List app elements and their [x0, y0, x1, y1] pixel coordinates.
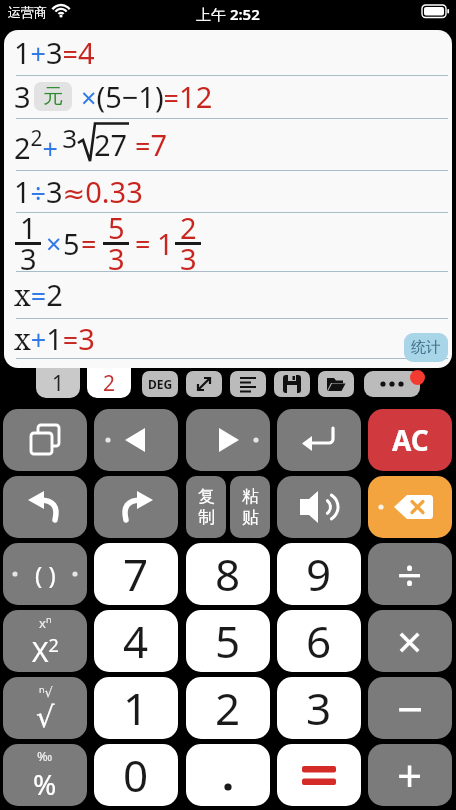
- button[interactable]: 统计: [404, 333, 448, 362]
- button[interactable]: AC: [368, 409, 452, 471]
- staticText: 7: [123, 544, 149, 604]
- button[interactable]: [277, 409, 361, 471]
- staticText: 3: [14, 77, 31, 116]
- staticText: x+1=3: [14, 319, 95, 358]
- staticText: 3: [180, 239, 197, 278]
- staticText: AC: [392, 421, 429, 459]
- staticText: 元: [43, 84, 63, 109]
- staticText: %: [33, 765, 57, 803]
- staticText: 1: [20, 208, 37, 247]
- button[interactable]: [94, 476, 178, 538]
- staticText: 3: [306, 678, 332, 738]
- staticText: ÷: [397, 544, 423, 604]
- button[interactable]: 复: [186, 476, 226, 538]
- staticText: ( ): [35, 558, 56, 591]
- staticText: xn: [39, 613, 52, 632]
- button[interactable]: 3: [277, 677, 361, 739]
- button[interactable]: ×: [368, 610, 452, 672]
- staticText: DEG: [148, 376, 173, 392]
- staticText: =: [135, 225, 151, 262]
- staticText: n√: [39, 683, 53, 700]
- button[interactable]: 8: [186, 543, 270, 605]
- staticText: 1: [157, 224, 174, 263]
- staticText: √: [36, 700, 55, 734]
- staticText: =: [81, 225, 97, 262]
- staticText: 2: [215, 678, 241, 738]
- button[interactable]: 2: [186, 677, 270, 739]
- button[interactable]: xn: [3, 610, 87, 672]
- button[interactable]: 9: [277, 543, 361, 605]
- button[interactable]: [186, 371, 222, 397]
- staticText: ‰: [37, 747, 53, 765]
- button[interactable]: n√: [3, 677, 87, 739]
- button[interactable]: [368, 476, 452, 538]
- staticText: 上午 2:52: [196, 4, 260, 24]
- button[interactable]: 7: [94, 543, 178, 605]
- staticText: 3: [108, 239, 125, 278]
- button[interactable]: ÷: [368, 543, 452, 605]
- staticText: X2: [32, 632, 59, 670]
- staticText: 5: [108, 208, 125, 247]
- staticText: 统计: [411, 338, 441, 357]
- button[interactable]: 粘: [230, 476, 270, 538]
- staticText: ×: [46, 225, 62, 262]
- button[interactable]: 1: [94, 677, 178, 739]
- button[interactable]: 4: [94, 610, 178, 672]
- button[interactable]: 5: [186, 610, 270, 672]
- button[interactable]: [277, 476, 361, 538]
- staticText: 制: [198, 507, 215, 528]
- button[interactable]: ‰: [3, 744, 87, 806]
- staticText: 1+3=4: [14, 33, 95, 72]
- staticText: 贴: [242, 507, 259, 528]
- staticText: +: [397, 745, 423, 805]
- staticText: =7: [135, 125, 168, 164]
- button[interactable]: 1: [36, 368, 80, 398]
- button[interactable]: 0: [94, 744, 178, 806]
- staticText: 1: [52, 369, 65, 398]
- staticText: 5: [63, 224, 80, 263]
- staticText: 3: [20, 239, 37, 278]
- button[interactable]: [277, 744, 361, 806]
- staticText: 2: [180, 208, 197, 247]
- button[interactable]: [274, 371, 310, 397]
- staticText: 8: [215, 544, 241, 604]
- staticText: 6: [306, 611, 332, 671]
- staticText: 运营商: [8, 4, 47, 20]
- staticText: ×(5−1)=12: [81, 77, 213, 116]
- staticText: 5: [215, 611, 241, 671]
- staticText: x=2: [14, 275, 63, 314]
- button[interactable]: [230, 371, 266, 397]
- staticText: 27: [94, 125, 128, 164]
- button[interactable]: [94, 409, 178, 471]
- button[interactable]: ( ): [3, 543, 87, 605]
- button[interactable]: 6: [277, 610, 361, 672]
- staticText: 9: [306, 544, 332, 604]
- staticText: −: [397, 677, 424, 739]
- button[interactable]: DEG: [142, 371, 178, 397]
- staticText: 粘: [242, 486, 259, 507]
- button[interactable]: [186, 744, 270, 806]
- button[interactable]: +: [368, 744, 452, 806]
- staticText: 22+ 3: [14, 120, 78, 168]
- staticText: 4: [123, 611, 149, 671]
- staticText: 1: [123, 678, 149, 738]
- staticText: 1÷3≈0.33: [14, 172, 143, 211]
- staticText: ×: [397, 611, 423, 671]
- staticText: 0: [123, 745, 149, 805]
- button[interactable]: [318, 371, 354, 397]
- staticText: 2: [103, 369, 116, 398]
- button[interactable]: 2: [87, 368, 131, 398]
- button[interactable]: [186, 409, 270, 471]
- button[interactable]: [3, 409, 87, 471]
- staticText: 复: [198, 486, 215, 507]
- button[interactable]: [3, 476, 87, 538]
- button[interactable]: −: [368, 677, 452, 739]
- button[interactable]: [364, 371, 420, 397]
